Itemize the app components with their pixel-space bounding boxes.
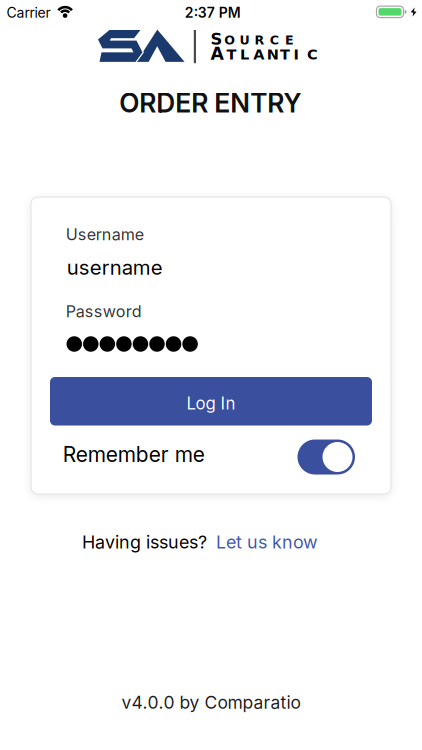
staticText: Username bbox=[66, 224, 144, 244]
staticText: ORDER ENTRY bbox=[119, 87, 301, 119]
button[interactable]: Let us know bbox=[216, 531, 318, 553]
button[interactable]: Log In bbox=[50, 377, 372, 425]
staticText: O bbox=[224, 33, 235, 48]
staticText: C bbox=[307, 46, 318, 63]
staticText: A bbox=[253, 46, 264, 63]
staticText: R bbox=[255, 33, 265, 48]
staticText: C bbox=[270, 33, 279, 48]
staticText: N bbox=[267, 46, 279, 63]
staticText: T bbox=[226, 46, 236, 63]
staticText: Carrier bbox=[6, 4, 50, 21]
staticText: S bbox=[210, 29, 222, 49]
staticText: U bbox=[239, 33, 249, 48]
staticText: Having issues? bbox=[82, 531, 207, 553]
staticText: 2:37 PM bbox=[185, 4, 241, 21]
button[interactable]: Remember me bbox=[297, 439, 355, 474]
staticText: I bbox=[293, 46, 298, 63]
staticText: Remember me bbox=[63, 442, 205, 467]
staticText: Password bbox=[66, 301, 142, 321]
staticText: Let us know bbox=[216, 531, 318, 553]
staticText: E bbox=[285, 33, 294, 48]
staticText: username bbox=[67, 255, 163, 280]
staticText: L bbox=[240, 46, 249, 63]
staticText: A bbox=[210, 44, 223, 64]
staticText: Log In bbox=[186, 393, 235, 413]
staticText: v4.0.0 by Comparatio bbox=[121, 692, 300, 713]
staticText: T bbox=[280, 46, 290, 63]
